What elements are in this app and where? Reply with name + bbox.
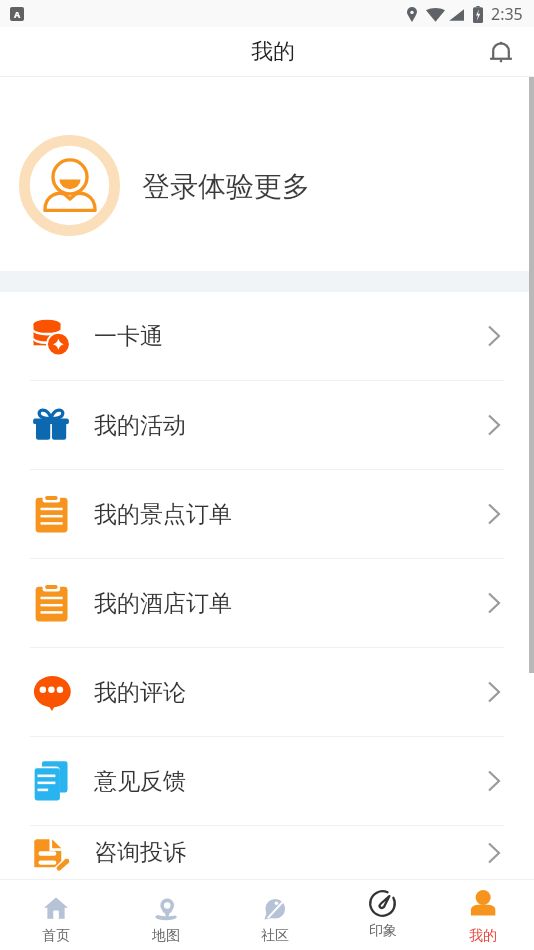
- button[interactable]: 我的酒店订单: [0, 559, 534, 647]
- button[interactable]: 咨询投诉: [0, 826, 534, 879]
- staticText: 我的景点订单: [94, 500, 232, 529]
- staticText: 地图: [152, 927, 180, 943]
- button[interactable]: 社区: [221, 879, 328, 950]
- staticText: 2:35: [491, 3, 523, 25]
- button[interactable]: 我的景点订单: [0, 470, 534, 558]
- staticText: A: [14, 8, 21, 20]
- button[interactable]: 我的评论: [0, 648, 534, 736]
- button[interactable]: 一卡通: [0, 292, 534, 380]
- staticText: 首页: [42, 927, 70, 943]
- staticText: 我的: [251, 38, 295, 66]
- staticText: 登录体验更多: [142, 169, 310, 204]
- button[interactable]: 首页: [2, 879, 109, 950]
- button[interactable]: 我的活动: [0, 381, 534, 469]
- staticText: 我的评论: [94, 678, 186, 707]
- button[interactable]: 意见反馈: [0, 737, 534, 825]
- staticText: 印象: [369, 922, 397, 938]
- staticText: 咨询投诉: [94, 838, 186, 867]
- button[interactable]: 印象: [329, 879, 436, 950]
- staticText: 我的活动: [94, 411, 186, 440]
- staticText: 一卡通: [94, 322, 163, 351]
- button[interactable]: Notifications: [484, 35, 518, 69]
- staticText: 我的: [469, 927, 497, 943]
- staticText: 社区: [261, 927, 289, 943]
- staticText: 我的酒店订单: [94, 589, 232, 618]
- staticText: 意见反馈: [94, 767, 186, 796]
- button[interactable]: 登录体验更多: [0, 77, 534, 271]
- button[interactable]: 地图: [112, 879, 219, 950]
- button[interactable]: 我的: [429, 879, 534, 950]
